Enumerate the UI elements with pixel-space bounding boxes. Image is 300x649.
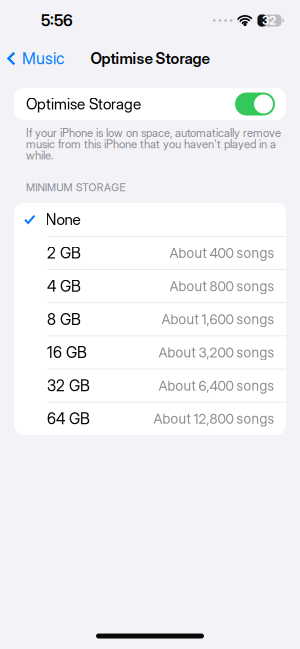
staticText: If your iPhone is low on space, automati… <box>26 126 281 162</box>
staticText: 64 GB <box>47 409 90 428</box>
button[interactable]: Back to Music <box>0 49 64 68</box>
staticText: 4 GB <box>47 277 81 295</box>
staticText: About 6,400 songs <box>158 377 274 394</box>
staticText: About 800 songs <box>169 278 274 294</box>
staticText: About 400 songs <box>169 245 274 261</box>
button[interactable]: None <box>14 203 286 236</box>
staticText: About 3,200 songs <box>158 344 274 361</box>
button[interactable]: 8 GB <box>14 303 286 335</box>
staticText: 5:56 <box>41 11 73 30</box>
button[interactable]: 2 GB <box>14 237 286 269</box>
staticText: MINIMUM STORAGE <box>26 181 125 194</box>
staticText: About 12,800 songs <box>153 410 274 427</box>
staticText: 32 GB <box>47 376 90 395</box>
staticText: 2 GB <box>47 244 81 262</box>
staticText: 8 GB <box>47 310 81 329</box>
button[interactable]: 64 GB <box>14 403 286 435</box>
button[interactable]: 4 GB <box>14 270 286 302</box>
staticText: 16 GB <box>47 343 87 362</box>
staticText: None <box>45 210 80 229</box>
button[interactable]: 16 GB <box>14 336 286 369</box>
staticText: Optimise Storage <box>90 49 209 68</box>
button[interactable]: 32 GB <box>14 369 286 402</box>
staticText: About 1,600 songs <box>161 311 274 328</box>
staticText: 32 <box>262 13 276 28</box>
button[interactable]: Optimise Storage <box>235 92 275 115</box>
staticText: Optimise Storage <box>26 95 141 113</box>
staticText: Music <box>22 49 64 68</box>
